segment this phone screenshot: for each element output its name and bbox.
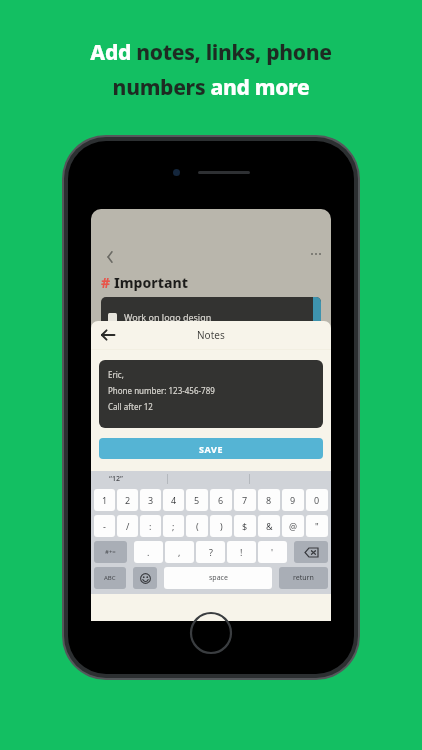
staticText: Eric, bbox=[108, 369, 124, 380]
button[interactable]: 1 bbox=[94, 489, 115, 511]
staticText: , bbox=[178, 546, 181, 558]
staticText: ? bbox=[209, 546, 213, 558]
button[interactable]: . bbox=[134, 541, 163, 563]
staticText: - bbox=[103, 520, 106, 532]
staticText: ! bbox=[240, 546, 243, 558]
staticText: 9 bbox=[290, 494, 296, 506]
button[interactable]: - bbox=[94, 515, 115, 537]
staticText: “12” bbox=[109, 474, 123, 484]
button[interactable]: Backspace bbox=[294, 541, 328, 563]
staticText: 4 bbox=[171, 494, 177, 506]
button[interactable]: ; bbox=[163, 515, 184, 537]
button[interactable]: ! bbox=[227, 541, 256, 563]
button[interactable]: Emoji bbox=[133, 567, 157, 589]
button[interactable]: space bbox=[164, 567, 272, 589]
staticText: return bbox=[293, 573, 314, 583]
button[interactable]: ' bbox=[258, 541, 287, 563]
button[interactable]: 2 bbox=[117, 489, 138, 511]
staticText: 8 bbox=[266, 494, 272, 506]
staticText: Notes bbox=[197, 328, 225, 342]
button[interactable]: 6 bbox=[210, 489, 232, 511]
staticText: ; bbox=[172, 520, 175, 532]
staticText: # bbox=[101, 273, 111, 292]
staticText: Add notes, links, phone bbox=[0, 38, 422, 67]
button[interactable]: return bbox=[279, 567, 328, 589]
button[interactable]: More options bbox=[311, 253, 321, 255]
staticText: ' bbox=[271, 546, 274, 558]
button[interactable]: : bbox=[140, 515, 161, 537]
staticText: numbers and more bbox=[0, 73, 422, 102]
button[interactable]: SAVE bbox=[99, 438, 323, 459]
staticText: 5 bbox=[194, 494, 200, 506]
staticText: : bbox=[149, 520, 152, 532]
staticText: & bbox=[266, 520, 273, 532]
button[interactable]: ? bbox=[196, 541, 225, 563]
staticText: Work on logo design bbox=[124, 311, 212, 323]
staticText: 0 bbox=[314, 494, 320, 506]
button[interactable]: @ bbox=[282, 515, 304, 537]
button[interactable]: Eric, bbox=[99, 360, 323, 428]
staticText: Phone number: 123-456-789 bbox=[108, 385, 215, 396]
staticText: 1 bbox=[102, 494, 108, 506]
button[interactable]: Back bbox=[99, 326, 117, 344]
staticText: SAVE bbox=[199, 443, 224, 455]
staticText: ( bbox=[196, 520, 199, 532]
staticText: #+= bbox=[105, 548, 116, 556]
button[interactable]: #+= bbox=[94, 541, 127, 563]
staticText: @ bbox=[289, 520, 298, 532]
staticText: $ bbox=[242, 520, 248, 532]
staticText: 7 bbox=[242, 494, 248, 506]
button[interactable]: 0 bbox=[306, 489, 328, 511]
button[interactable]: 4 bbox=[163, 489, 184, 511]
staticText: / bbox=[126, 520, 130, 532]
button[interactable]: & bbox=[258, 515, 280, 537]
staticText: Important bbox=[114, 273, 188, 292]
staticText: ) bbox=[220, 520, 223, 532]
button[interactable]: / bbox=[117, 515, 138, 537]
staticText: 2 bbox=[125, 494, 131, 506]
button[interactable]: 7 bbox=[234, 489, 256, 511]
button[interactable]: Back bbox=[101, 247, 121, 267]
staticText: space bbox=[209, 573, 228, 583]
staticText: ABC bbox=[104, 574, 116, 582]
button[interactable]: Work on logo design bbox=[101, 297, 321, 337]
staticText: 3 bbox=[148, 494, 154, 506]
staticText: " bbox=[315, 520, 319, 532]
button[interactable]: 8 bbox=[258, 489, 280, 511]
button[interactable]: " bbox=[306, 515, 328, 537]
button[interactable]: ) bbox=[210, 515, 232, 537]
button[interactable]: $ bbox=[234, 515, 256, 537]
button[interactable]: 9 bbox=[282, 489, 304, 511]
button[interactable]: 3 bbox=[140, 489, 161, 511]
staticText: . bbox=[147, 546, 150, 558]
staticText: Call after 12 bbox=[108, 401, 153, 412]
button[interactable]: ( bbox=[186, 515, 208, 537]
staticText: 6 bbox=[218, 494, 224, 506]
button[interactable]: 5 bbox=[186, 489, 208, 511]
button[interactable]: ABC bbox=[94, 567, 126, 589]
button[interactable]: , bbox=[165, 541, 194, 563]
